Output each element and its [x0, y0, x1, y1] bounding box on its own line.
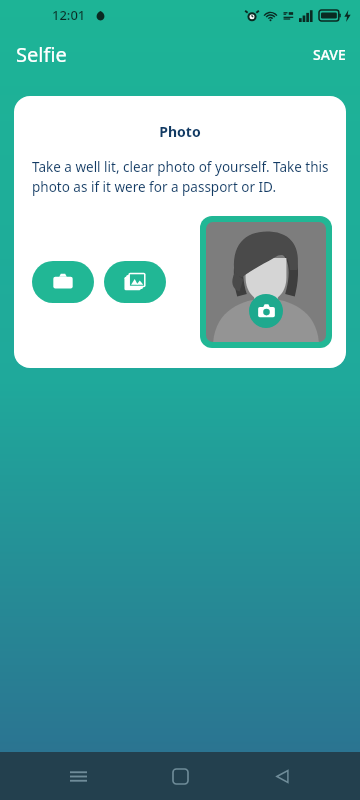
button[interactable]: SAVE — [299, 37, 360, 72]
button[interactable]: Recent apps — [54, 752, 102, 800]
staticText: SAVE — [313, 45, 346, 64]
staticText: Photo — [32, 122, 328, 141]
staticText: 12:01 — [52, 6, 86, 24]
button[interactable]: Home — [156, 752, 204, 800]
button[interactable]: Photo preview — [206, 222, 326, 342]
staticText: Take a well lit, clear photo of yourself… — [32, 158, 332, 196]
button[interactable]: Back — [258, 752, 306, 800]
staticText: Selfie — [16, 41, 67, 68]
button[interactable]: Choose from gallery — [104, 261, 166, 303]
button[interactable]: Take photo — [32, 261, 94, 303]
